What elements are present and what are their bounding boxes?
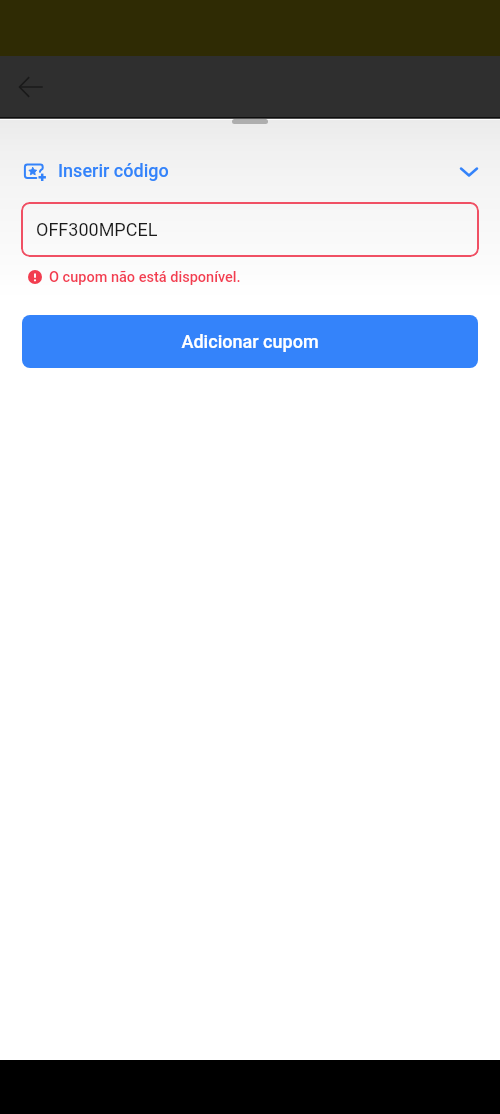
button[interactable]: Adicionar cupom xyxy=(22,315,478,368)
button[interactable]: Back xyxy=(9,65,53,109)
staticText: Adicionar cupom xyxy=(181,331,319,352)
staticText: OFF300MPCEL xyxy=(36,219,158,240)
staticText: O cupom não está disponível. xyxy=(49,269,241,286)
button[interactable]: OFF300MPCEL xyxy=(21,202,479,257)
staticText: Inserir código xyxy=(58,160,169,181)
button[interactable]: Inserir código xyxy=(0,158,500,186)
other: Expand xyxy=(459,165,479,179)
